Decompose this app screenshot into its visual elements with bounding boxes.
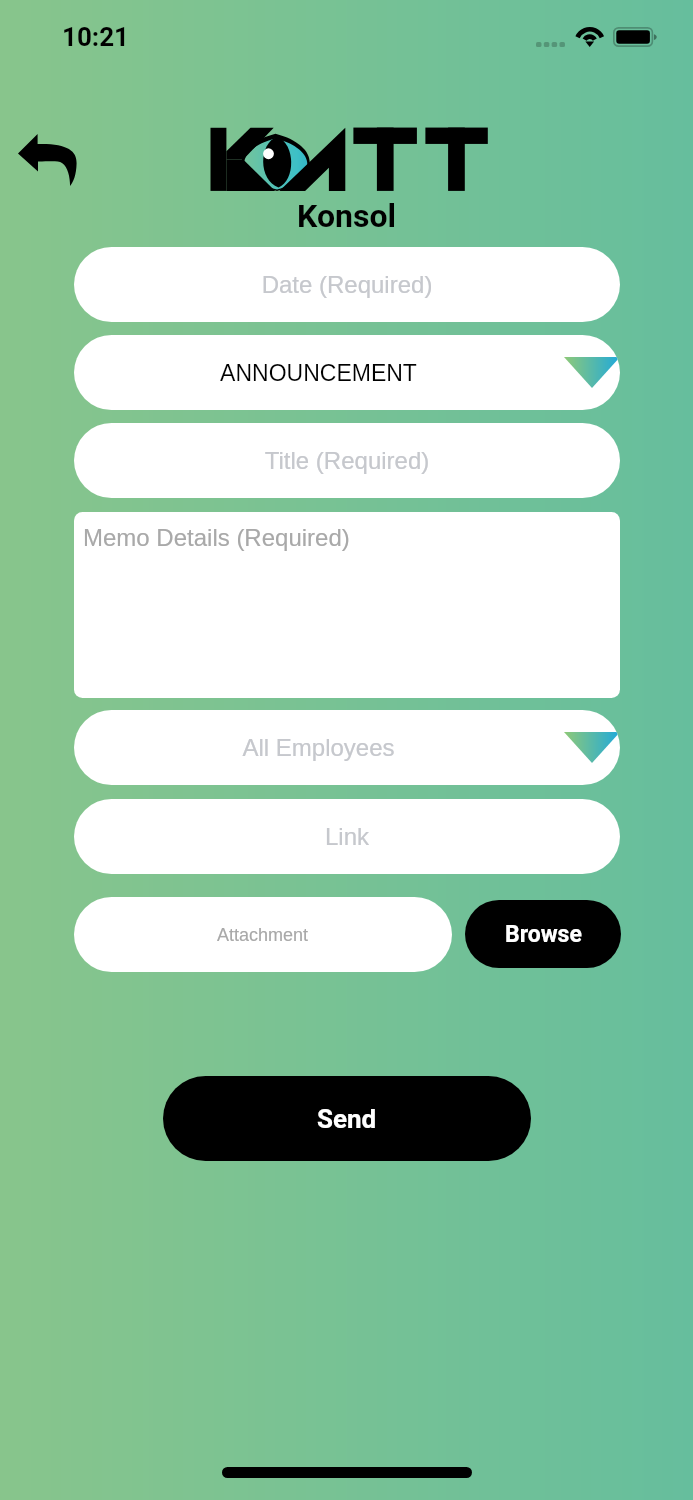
staticText: ANNOUNCEMENT [74,360,563,386]
staticText: Browse [505,921,582,948]
staticText: Title (Required) [74,447,620,474]
staticText: Attachment [217,925,309,945]
staticText: Date (Required) [74,271,620,298]
button[interactable]: ANNOUNCEMENT [74,335,620,410]
button[interactable]: Link [74,799,620,874]
button[interactable]: Back [4,120,90,200]
button[interactable]: Memo Details (Required) [74,512,620,698]
button[interactable]: Date (Required) [74,247,620,322]
button[interactable]: Title (Required) [74,423,620,498]
staticText: Send [317,1104,377,1134]
button[interactable]: All Employees [74,710,620,785]
button[interactable]: Browse [465,900,621,968]
button[interactable]: Attachment [74,897,452,972]
staticText: 10:21 [62,22,130,52]
staticText: Link [74,823,620,850]
staticText: Memo Details (Required) [83,524,350,551]
staticText: Konsol [297,197,396,235]
button[interactable]: Send [163,1076,531,1161]
staticText: All Employees [74,734,563,761]
